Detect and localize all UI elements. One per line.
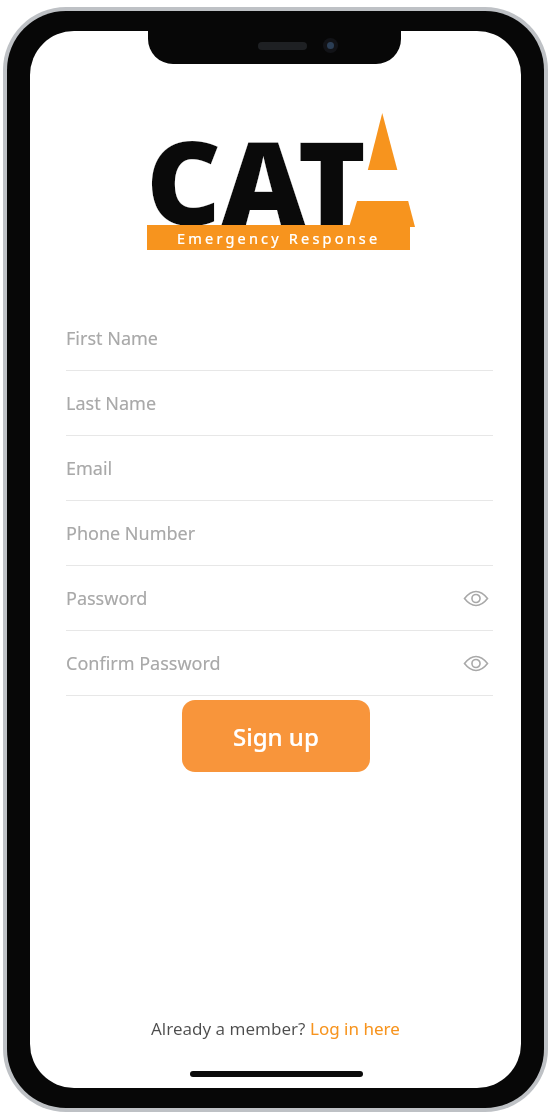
staticText: CAT xyxy=(146,101,366,259)
button[interactable]: First Name xyxy=(66,313,493,371)
button[interactable]: Last Name xyxy=(66,378,493,436)
staticText: Already a member? xyxy=(151,1017,310,1040)
staticText: Password xyxy=(66,586,148,611)
other: CAT cone logo xyxy=(343,111,415,231)
staticText: Sign up xyxy=(233,720,319,753)
button[interactable]: Log in here xyxy=(310,1017,400,1040)
button[interactable]: Toggle password visibility xyxy=(459,646,493,680)
staticText: Email xyxy=(66,456,113,481)
staticText: Emergency Response xyxy=(177,228,381,248)
staticText: Phone Number xyxy=(66,521,196,546)
button[interactable]: Confirm Password xyxy=(66,638,493,696)
staticText: First Name xyxy=(66,326,158,351)
button[interactable]: Password xyxy=(66,573,493,631)
button[interactable]: Phone Number xyxy=(66,508,493,566)
button[interactable]: Toggle password visibility xyxy=(459,581,493,615)
button[interactable]: Email xyxy=(66,443,493,501)
staticText: Log in here xyxy=(310,1017,400,1040)
button[interactable]: Sign up xyxy=(182,700,370,772)
staticText: Last Name xyxy=(66,391,157,416)
staticText: Confirm Password xyxy=(66,651,221,676)
